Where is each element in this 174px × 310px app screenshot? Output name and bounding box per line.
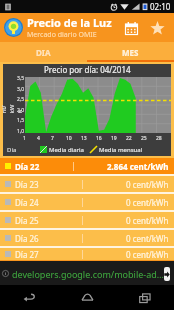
staticText: 4 [37, 135, 40, 142]
staticText: 0 cent/kWh [126, 197, 169, 208]
staticText: 13 [81, 135, 87, 142]
staticText: Día 23 [15, 179, 39, 190]
button[interactable]: DIA [0, 42, 87, 62]
staticText: cent/kWh [0, 104, 23, 113]
staticText: DIA [36, 47, 51, 58]
staticText: Media mensual [99, 146, 143, 154]
button[interactable]: Día 26 [0, 230, 174, 246]
staticText: developers.google.com/mobile-ad… [12, 268, 164, 280]
staticText: 22 [126, 135, 132, 142]
button[interactable]: Favorito [144, 15, 170, 41]
staticText: 0 cent/kWh [126, 249, 169, 260]
staticText: 19 [111, 135, 117, 142]
staticText: 2,5 [12, 96, 24, 103]
staticText: Día 24 [15, 197, 39, 208]
staticText: 28 [156, 135, 162, 142]
button[interactable]: Día 27 [0, 248, 174, 260]
staticText: Día [7, 146, 17, 154]
staticText: 1,5 [12, 117, 24, 124]
staticText: 0 cent/kWh [126, 233, 169, 244]
button[interactable]: Día 23 [0, 176, 174, 192]
staticText: 3,0 [12, 86, 24, 93]
staticText: Día 26 [15, 233, 39, 244]
button[interactable]: Día 24 [0, 194, 174, 210]
staticText: 2.864 cent/kWh [107, 161, 169, 172]
staticText: 1,0 [12, 128, 24, 135]
staticText: 0 cent/kWh [126, 215, 169, 226]
button[interactable]: Día 25 [0, 212, 174, 228]
staticText: Precio de la Luz [27, 15, 112, 30]
staticText: Precio por día: 04/2014 [44, 64, 131, 75]
staticText: Día 27 [15, 249, 39, 260]
staticText: Mercado diario OMIE [27, 30, 97, 40]
staticText: 0 cent/kWh [126, 179, 169, 190]
button[interactable]: Recientes [116, 285, 174, 310]
staticText: 25 [141, 135, 147, 142]
button[interactable]: Atrás [0, 285, 58, 310]
staticText: MES [122, 47, 139, 58]
staticText: 02:10 [150, 1, 171, 12]
staticText: 3,5 [12, 75, 24, 82]
button[interactable]: Inicio [58, 285, 116, 310]
staticText: Media diaria [49, 146, 84, 154]
staticText: 1 [23, 135, 26, 142]
staticText: 7 [51, 135, 54, 142]
staticText: Día 22 [15, 161, 40, 172]
staticText: Día 25 [15, 215, 39, 226]
button[interactable]: developers.google.com/mobile-ad… [0, 260, 174, 285]
button[interactable]: MES [87, 42, 174, 62]
staticText: 10 [66, 135, 72, 142]
staticText: 2,0 [12, 107, 24, 114]
staticText: 16 [96, 135, 102, 142]
button[interactable]: Día 22 [0, 158, 174, 174]
button[interactable]: Abrir anuncio [164, 267, 170, 281]
button[interactable]: Calendario [118, 15, 144, 41]
